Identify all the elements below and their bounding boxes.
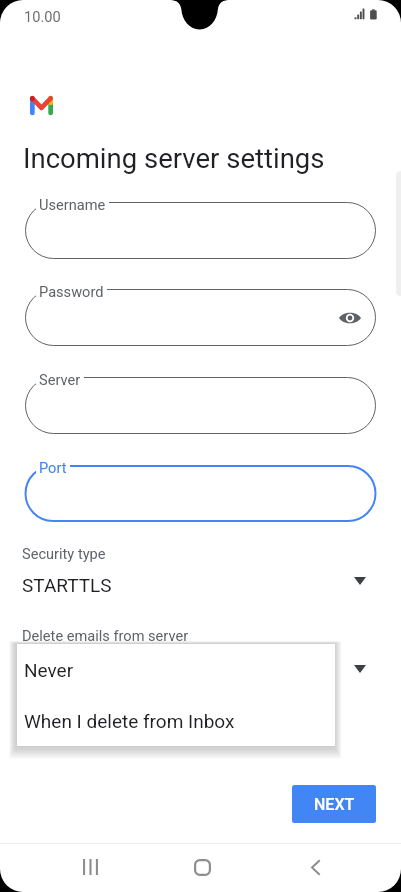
- button[interactable]: Never: [17, 644, 335, 695]
- staticText: Security type: [22, 545, 106, 562]
- button[interactable]: Recent apps: [64, 842, 116, 892]
- staticText: Username: [39, 196, 106, 212]
- staticText: Never: [24, 659, 74, 681]
- button[interactable]: When I delete from Inbox: [17, 695, 335, 746]
- button[interactable]: Show password: [336, 289, 364, 346]
- button[interactable]: Port: [0, 465, 401, 522]
- staticText: Incoming server settings: [23, 142, 325, 174]
- button[interactable]: Username: [0, 202, 401, 259]
- staticText: STARTTLS: [22, 574, 112, 596]
- staticText: NEXT: [314, 795, 355, 814]
- button[interactable]: STARTTLS: [0, 570, 401, 600]
- button[interactable]: Server: [0, 377, 401, 434]
- staticText: Password: [39, 283, 104, 299]
- staticText: Delete emails from server: [22, 627, 189, 644]
- staticText: Server: [39, 371, 81, 387]
- button[interactable]: Home: [176, 842, 228, 892]
- staticText: 10.00: [24, 8, 61, 25]
- staticText: Port: [39, 459, 67, 475]
- button[interactable]: Password: [0, 289, 401, 346]
- staticText: When I delete from Inbox: [24, 710, 235, 732]
- button[interactable]: Back: [289, 842, 341, 892]
- button[interactable]: NEXT: [292, 785, 376, 823]
